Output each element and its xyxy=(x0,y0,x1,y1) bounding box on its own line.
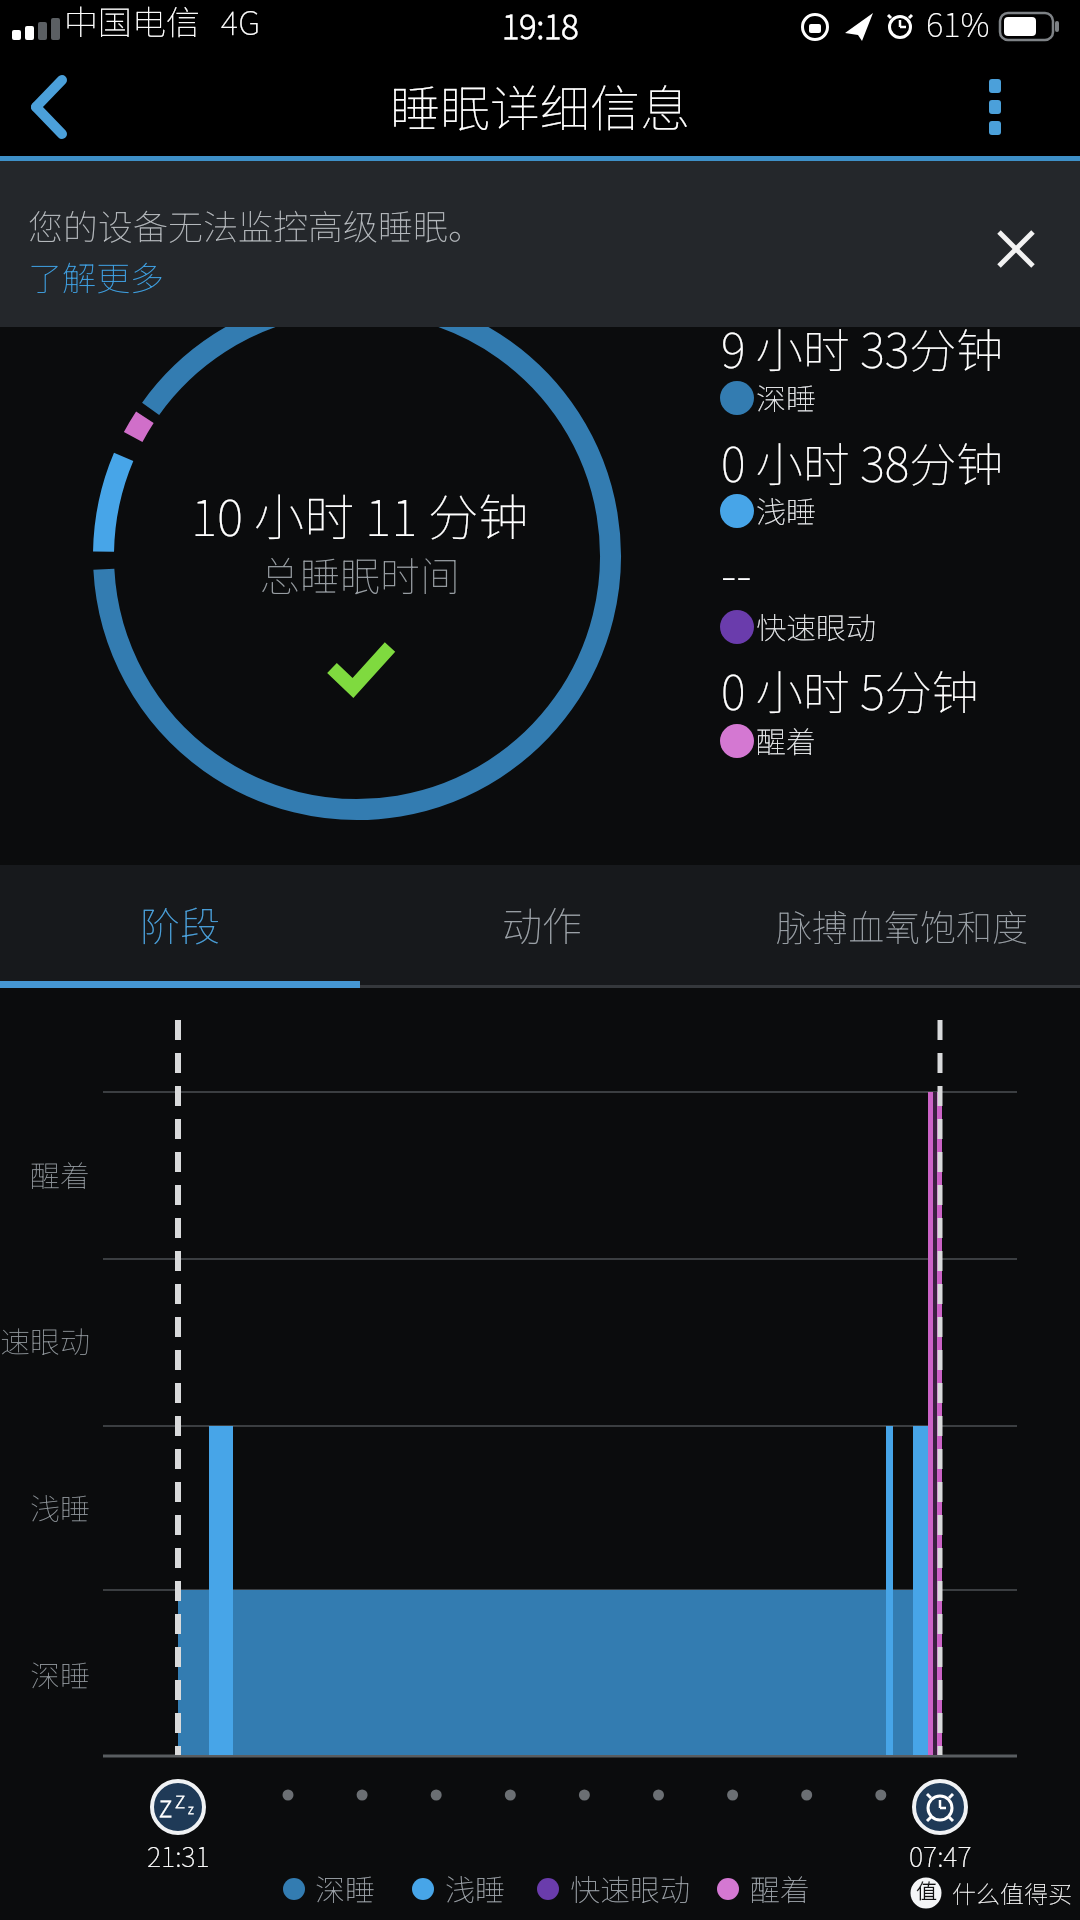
staticText: 醒着 xyxy=(756,718,816,761)
staticText: 21:31 xyxy=(147,1836,210,1875)
button[interactable]: 阶段 xyxy=(0,884,360,964)
staticText: -- xyxy=(721,537,752,605)
staticText: 19:18 xyxy=(502,1,579,49)
staticText: 深睡 xyxy=(315,1866,375,1909)
staticText: 值 xyxy=(916,1875,937,1905)
staticText: 醒着 xyxy=(750,1866,810,1909)
staticText: 9 小时 33分钟 xyxy=(721,313,1004,381)
staticText: 浅睡 xyxy=(445,1866,505,1909)
staticText: 脉搏血氧饱和度 xyxy=(776,899,1029,951)
staticText: 中国电信 xyxy=(64,0,200,45)
button[interactable] xyxy=(960,70,1030,146)
staticText: 10 小时 11 分钟 xyxy=(191,478,529,550)
staticText: 阶段 xyxy=(140,895,220,953)
staticText: 动作 xyxy=(502,895,582,953)
staticText: 快速眼动 xyxy=(756,604,876,647)
staticText: 浅睡 xyxy=(756,488,816,531)
staticText: 快速眼动 xyxy=(0,1318,90,1361)
staticText: 您的设备无法监控高级睡眠。 xyxy=(28,199,484,250)
staticText: Z xyxy=(175,1788,186,1813)
staticText: 深睡 xyxy=(30,1652,90,1695)
button[interactable]: 了解更多 xyxy=(28,242,168,310)
button[interactable] xyxy=(985,218,1047,280)
staticText: 总睡眠时间 xyxy=(260,545,460,603)
staticText: 0 小时 38分钟 xyxy=(721,427,1004,495)
button[interactable]: 动作 xyxy=(360,884,724,964)
staticText: 深睡 xyxy=(756,375,816,418)
staticText: 什么值得买 xyxy=(952,1875,1072,1910)
staticText: 浅睡 xyxy=(30,1485,90,1528)
staticText: Z xyxy=(159,1791,173,1823)
staticText: 07:47 xyxy=(909,1836,972,1875)
staticText: 睡眠详细信息 xyxy=(390,69,690,141)
staticText: 醒着 xyxy=(30,1152,90,1195)
button[interactable] xyxy=(10,70,90,146)
staticText: 快速眼动 xyxy=(570,1866,690,1909)
staticText: 0 小时 5分钟 xyxy=(721,655,979,723)
button[interactable]: 脉搏血氧饱和度 xyxy=(724,889,1080,961)
staticText: 了解更多 xyxy=(28,252,164,301)
staticText: 61% xyxy=(926,0,990,47)
staticText: z xyxy=(188,1799,194,1818)
staticText: 4G xyxy=(221,0,261,45)
